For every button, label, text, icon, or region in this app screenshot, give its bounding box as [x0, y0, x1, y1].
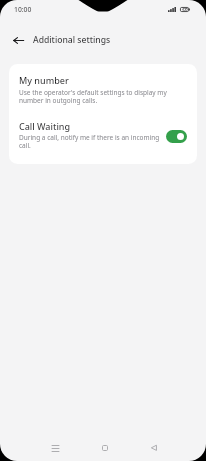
button[interactable]: Call waiting toggle [166, 130, 187, 143]
button[interactable]: Back [6, 28, 30, 52]
button[interactable]: Back [137, 435, 171, 461]
staticText: My number [19, 74, 69, 86]
staticText: Call Waiting [19, 120, 71, 132]
staticText: 10:00 [14, 5, 32, 14]
staticText: Additional settings [33, 34, 111, 46]
staticText: During a call, notify me if there is an … [19, 133, 161, 150]
button[interactable]: My number [9, 64, 197, 117]
button[interactable]: Recent apps [38, 435, 72, 461]
button[interactable]: Home [88, 435, 122, 461]
staticText: Use the operator's default settings to d… [19, 88, 171, 105]
button[interactable]: Call Waiting [9, 117, 197, 164]
